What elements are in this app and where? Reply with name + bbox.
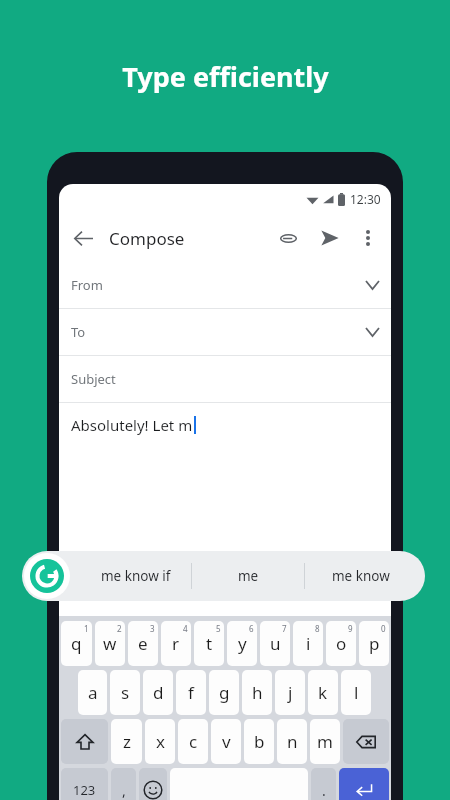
button[interactable]: More options	[351, 221, 385, 255]
staticText: i	[306, 632, 311, 655]
staticText: 5	[216, 623, 221, 634]
button[interactable]: me know if	[80, 551, 191, 601]
staticText: me know	[332, 567, 390, 585]
button[interactable]: .	[311, 768, 336, 800]
staticText: w	[103, 632, 117, 655]
staticText: 0	[381, 623, 386, 634]
button[interactable]: me	[192, 551, 304, 601]
staticText: me	[238, 567, 259, 585]
button[interactable]: Enter	[339, 768, 389, 800]
staticText: 7	[282, 623, 287, 634]
staticText: b	[254, 730, 265, 753]
button[interactable]: 123	[61, 768, 108, 800]
staticText: 8	[315, 623, 320, 634]
button[interactable]: l	[341, 670, 371, 715]
staticText: 2	[117, 623, 122, 634]
staticText: 3	[150, 623, 155, 634]
staticText: g	[219, 681, 230, 704]
button[interactable]: h	[242, 670, 272, 715]
button[interactable]: p	[359, 621, 389, 666]
button[interactable]: d	[143, 670, 173, 715]
button[interactable]: a	[78, 670, 107, 715]
button[interactable]: m	[310, 719, 340, 764]
staticText: 12:30	[350, 191, 381, 207]
button[interactable]: q	[61, 621, 92, 666]
button[interactable]: x	[145, 719, 175, 764]
staticText: v	[222, 730, 231, 753]
staticText: z	[123, 730, 131, 753]
staticText: s	[121, 681, 130, 704]
staticText: n	[287, 730, 298, 753]
button[interactable]: Send	[313, 221, 347, 255]
staticText: 9	[348, 623, 353, 634]
staticText: me know if	[101, 567, 171, 585]
staticText: x	[156, 730, 165, 753]
button[interactable]: t	[194, 621, 224, 666]
button[interactable]: z	[111, 719, 142, 764]
button[interactable]: To	[59, 309, 391, 355]
staticText: 123	[73, 781, 96, 799]
button[interactable]: e	[128, 621, 158, 666]
button[interactable]: u	[260, 621, 290, 666]
button[interactable]: y	[227, 621, 257, 666]
button[interactable]: Grammarly	[24, 553, 70, 599]
staticText: 1	[84, 623, 89, 634]
button[interactable]: From	[59, 262, 391, 308]
button[interactable]: o	[326, 621, 356, 666]
button[interactable]: b	[244, 719, 274, 764]
button[interactable]: g	[209, 670, 239, 715]
staticText: To	[71, 323, 86, 341]
button[interactable]: j	[275, 670, 305, 715]
button[interactable]: c	[178, 719, 208, 764]
staticText: Absolutely! Let m	[71, 415, 193, 435]
staticText: 4	[183, 623, 188, 634]
button[interactable]: n	[277, 719, 307, 764]
button[interactable]: Compose	[109, 227, 185, 250]
button[interactable]: Back	[65, 220, 101, 256]
button[interactable]: Shift	[61, 719, 108, 764]
button[interactable]: Attach file	[271, 221, 305, 255]
button[interactable]: Subject	[59, 356, 391, 402]
staticText: t	[206, 632, 213, 655]
button[interactable]: w	[95, 621, 125, 666]
staticText: l	[354, 681, 359, 704]
button[interactable]: ,	[111, 768, 136, 800]
staticText: h	[252, 681, 263, 704]
button[interactable]: i	[293, 621, 323, 666]
staticText: 6	[249, 623, 254, 634]
staticText: a	[88, 681, 98, 704]
button[interactable]: f	[176, 670, 206, 715]
staticText: ,	[122, 781, 126, 800]
staticText: Subject	[71, 370, 116, 388]
staticText: q	[71, 632, 82, 655]
staticText: p	[369, 632, 380, 655]
staticText: .	[322, 781, 326, 800]
button[interactable]: r	[161, 621, 191, 666]
staticText: d	[153, 681, 164, 704]
button[interactable]: Backspace	[343, 719, 389, 764]
button[interactable]: Emoji	[139, 768, 167, 800]
staticText: c	[189, 730, 198, 753]
staticText: u	[270, 632, 281, 655]
staticText: Type efficiently	[122, 58, 329, 95]
button[interactable]: s	[110, 670, 140, 715]
staticText: o	[336, 632, 347, 655]
button[interactable]: k	[308, 670, 338, 715]
staticText: f	[188, 681, 194, 704]
staticText: From	[71, 276, 103, 294]
staticText: r	[172, 632, 180, 655]
button[interactable]: me know	[305, 551, 417, 601]
staticText: k	[318, 681, 328, 704]
staticText: m	[317, 730, 333, 753]
staticText: e	[138, 632, 148, 655]
staticText: y	[238, 632, 247, 655]
button[interactable]: v	[211, 719, 241, 764]
staticText: j	[288, 681, 293, 704]
